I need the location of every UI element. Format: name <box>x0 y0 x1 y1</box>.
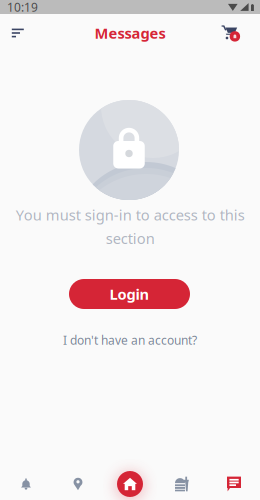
button[interactable]: Home <box>104 464 156 500</box>
staticText: 10:19 <box>7 0 38 15</box>
button[interactable]: Messages <box>208 464 260 500</box>
staticText: Messages <box>94 23 165 43</box>
button[interactable]: Menu <box>5 20 31 46</box>
button[interactable]: Nearby <box>52 464 104 500</box>
button[interactable]: Login <box>69 279 190 309</box>
staticText: You must sign-in to access to this secti… <box>15 205 244 248</box>
button[interactable]: Cart <box>217 20 244 46</box>
staticText: Login <box>109 284 149 304</box>
staticText: I don't have an account? <box>63 332 197 348</box>
button[interactable]: Notifications <box>0 464 52 500</box>
button[interactable]: I don't have an account? <box>55 331 205 349</box>
button[interactable]: Menu <box>156 464 208 500</box>
